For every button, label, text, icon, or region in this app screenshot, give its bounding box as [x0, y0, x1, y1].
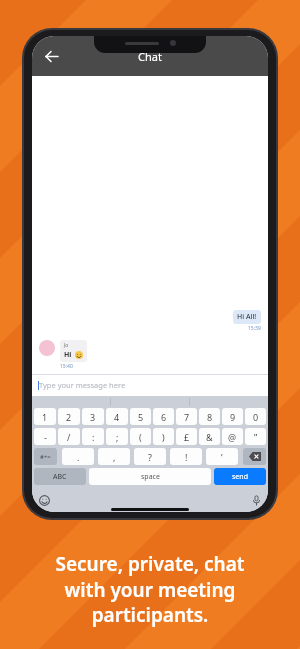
button[interactable]: send [214, 468, 266, 485]
button[interactable]: Back [34, 39, 68, 73]
staticText: : [92, 431, 95, 443]
button[interactable]: , [98, 448, 130, 465]
button[interactable]: 0 [245, 408, 266, 425]
button[interactable]: #+= [34, 448, 57, 465]
staticText: 8 [207, 411, 213, 423]
button[interactable]: Emoji [36, 492, 52, 508]
button[interactable]: 6 [153, 408, 174, 425]
button[interactable]: ; [106, 428, 128, 445]
staticText: Hi [64, 350, 72, 360]
button[interactable]: Jo [64, 342, 83, 360]
staticText: ” [254, 431, 258, 443]
button[interactable]: 7 [176, 408, 197, 425]
button[interactable]: ’ [206, 448, 238, 465]
button[interactable]: Voice input [248, 492, 264, 508]
staticText: 4 [114, 411, 120, 423]
staticText: 0 [253, 411, 259, 423]
staticText: ( [139, 431, 142, 443]
button[interactable]: @ [222, 428, 243, 445]
staticText: 3 [90, 411, 96, 423]
staticText: . [77, 451, 80, 463]
button[interactable]: ! [170, 448, 202, 465]
button[interactable]: ) [153, 428, 174, 445]
button[interactable]: ( [130, 428, 151, 445]
staticText: 9 [230, 411, 236, 423]
staticText: Chat [138, 49, 162, 64]
button[interactable]: ” [245, 428, 266, 445]
staticText: ABC [53, 472, 67, 482]
button[interactable]: £ [176, 428, 197, 445]
button[interactable]: / [58, 428, 80, 445]
staticText: , [113, 451, 116, 463]
staticText: Jo [64, 342, 69, 349]
staticText: ’ [221, 451, 223, 463]
staticText: 1 [42, 411, 48, 423]
staticText: & [206, 431, 213, 443]
staticText: £ [184, 431, 190, 443]
button[interactable]: & [199, 428, 220, 445]
button[interactable]: 8 [199, 408, 220, 425]
staticText: 5 [138, 411, 144, 423]
staticText: ! [185, 451, 188, 463]
button[interactable]: Type your message here [38, 374, 268, 396]
button[interactable]: 2 [58, 408, 80, 425]
staticText: send [232, 472, 248, 482]
staticText: 6 [161, 411, 167, 423]
staticText: Hi All! [237, 312, 257, 322]
button[interactable]: 3 [82, 408, 104, 425]
button[interactable]: 4 [106, 408, 128, 425]
staticText: 2 [66, 411, 72, 423]
button[interactable]: Hi All! [237, 312, 257, 322]
button[interactable]: ABC [34, 468, 86, 485]
button[interactable]: : [82, 428, 104, 445]
staticText: - [44, 431, 47, 443]
button[interactable]: 5 [130, 408, 151, 425]
button[interactable]: Backspace [243, 448, 266, 465]
staticText: #+= [40, 453, 51, 461]
staticText: Secure, private, chat with your meeting … [55, 551, 245, 627]
staticText: / [67, 431, 71, 443]
staticText: ; [116, 431, 119, 443]
staticText: 15:40 [60, 363, 73, 370]
button[interactable]: ? [134, 448, 166, 465]
staticText: @ [228, 431, 237, 443]
staticText: ) [162, 431, 165, 443]
button[interactable]: space [89, 468, 211, 485]
staticText: ? [148, 451, 152, 463]
button[interactable]: - [34, 428, 56, 445]
button[interactable]: . [62, 448, 94, 465]
staticText: Type your message here [39, 380, 126, 390]
staticText: 7 [184, 411, 190, 423]
staticText: space [141, 472, 160, 482]
button[interactable]: 9 [222, 408, 243, 425]
button[interactable]: 1 [34, 408, 56, 425]
staticText: 15:39 [248, 325, 261, 332]
